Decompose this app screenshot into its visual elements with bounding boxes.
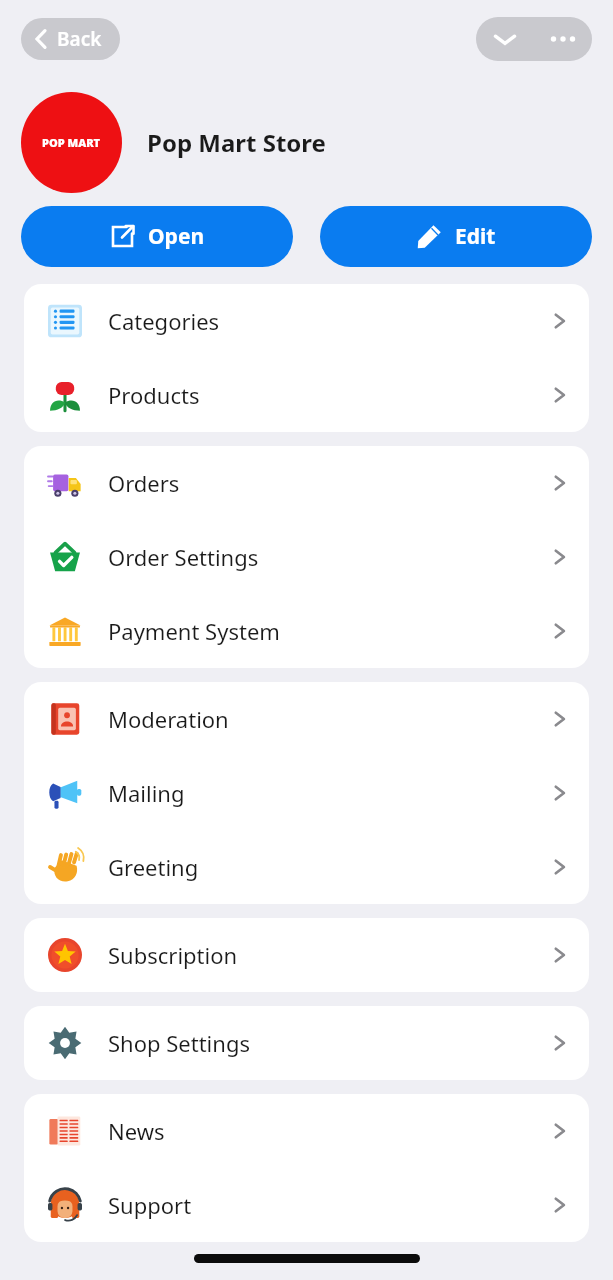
staticText: Categories bbox=[108, 306, 220, 336]
button[interactable]: More options bbox=[534, 17, 592, 61]
staticText: Subscription bbox=[108, 940, 238, 970]
staticText: Products bbox=[108, 380, 200, 410]
staticText: Moderation bbox=[108, 704, 229, 734]
button[interactable]: Order Settings bbox=[24, 520, 589, 594]
button[interactable]: Greeting bbox=[24, 830, 589, 904]
button[interactable]: Open bbox=[21, 206, 293, 267]
staticText: Pop Mart Store bbox=[147, 126, 326, 159]
staticText: Support bbox=[108, 1190, 192, 1220]
button[interactable]: Orders bbox=[24, 446, 589, 520]
button[interactable]: Payment System bbox=[24, 594, 589, 668]
button[interactable]: Products bbox=[24, 358, 589, 432]
staticText: Back bbox=[57, 26, 102, 52]
button[interactable]: Mailing bbox=[24, 756, 589, 830]
button[interactable]: Support bbox=[24, 1168, 589, 1242]
staticText: Edit bbox=[455, 222, 496, 251]
staticText: Shop Settings bbox=[108, 1028, 250, 1058]
button[interactable]: Collapse bbox=[476, 17, 534, 61]
button[interactable]: Moderation bbox=[24, 682, 589, 756]
staticText: News bbox=[108, 1116, 165, 1146]
staticText: Payment System bbox=[108, 616, 280, 646]
button[interactable]: Categories bbox=[24, 284, 589, 358]
staticText: Greeting bbox=[108, 852, 199, 882]
button[interactable]: Subscription bbox=[24, 918, 589, 992]
button[interactable]: Edit bbox=[320, 206, 592, 267]
staticText: Open bbox=[148, 222, 205, 251]
button[interactable]: Back bbox=[21, 18, 120, 60]
staticText: Order Settings bbox=[108, 542, 259, 572]
staticText: Mailing bbox=[108, 778, 185, 808]
button[interactable]: News bbox=[24, 1094, 589, 1168]
staticText: POP MART bbox=[42, 135, 101, 150]
button[interactable]: Shop Settings bbox=[24, 1006, 589, 1080]
staticText: Orders bbox=[108, 468, 180, 498]
